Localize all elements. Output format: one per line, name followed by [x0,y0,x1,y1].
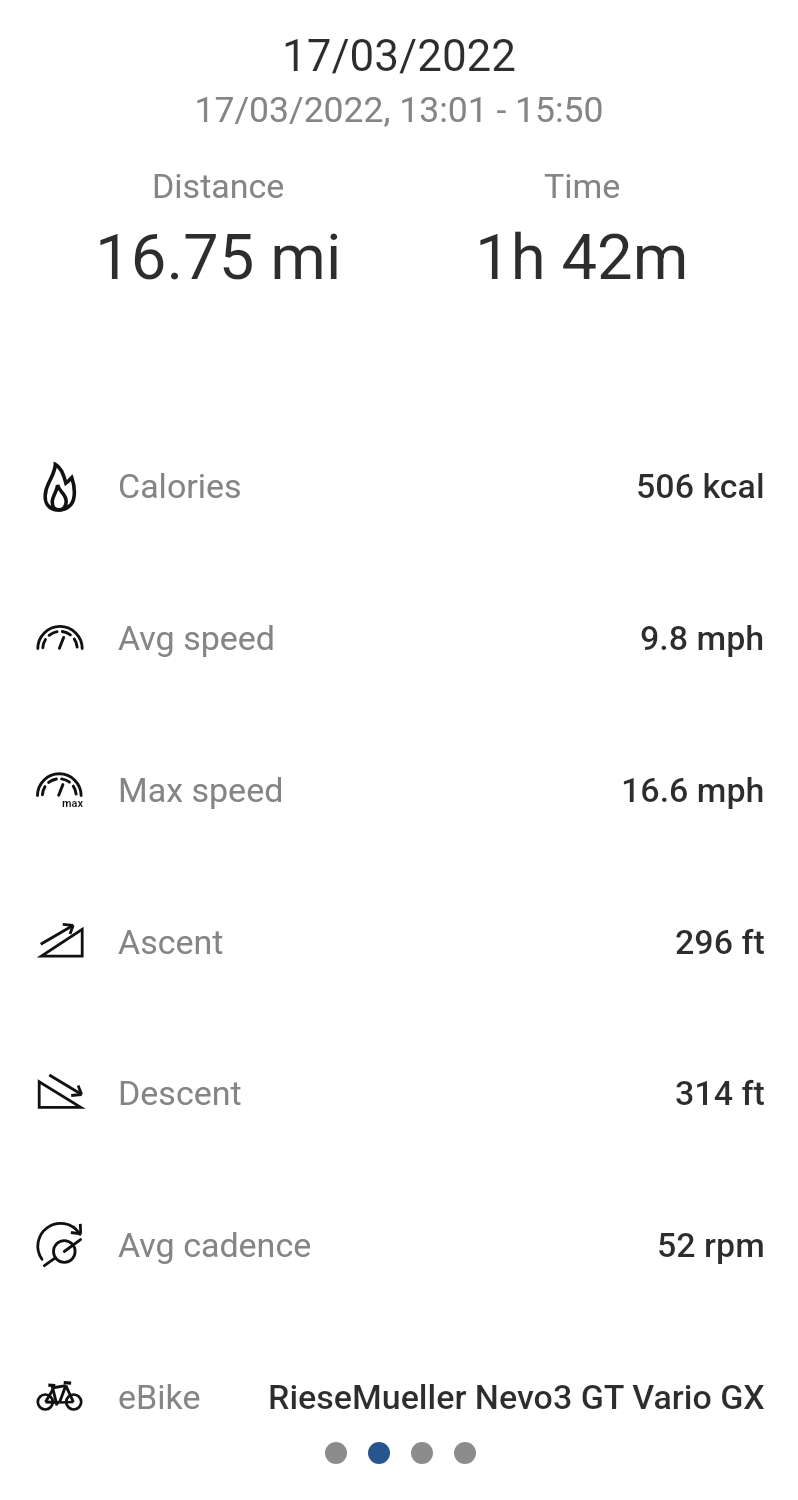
button[interactable]: Avg cadence [0,1169,798,1321]
staticText: max [62,797,84,810]
button[interactable]: Calories [0,410,798,562]
button[interactable]: Avg speed [0,562,798,714]
button[interactable]: Page 3 [411,1442,433,1464]
staticText: Max speed [118,770,284,810]
staticText: RieseMueller Nevo3 GT Vario GX [268,1377,765,1417]
staticText: 1h 42m [475,220,689,294]
button[interactable]: Page 1 [325,1442,347,1464]
staticText: 52 rpm [657,1225,765,1265]
staticText: 17/03/2022 [0,30,798,82]
button[interactable]: max [0,714,798,866]
staticText: 17/03/2022, 13:01 - 15:50 [0,89,798,131]
staticText: Calories [118,466,242,506]
staticText: 506 kcal [636,466,765,506]
staticText: 16.75 mi [95,220,342,294]
staticText: 9.8 mph [640,618,765,658]
button[interactable]: Descent [0,1017,798,1169]
staticText: Distance [152,166,285,206]
staticText: Avg cadence [118,1225,312,1265]
button[interactable]: Page 4 [454,1442,476,1464]
button[interactable]: Ascent [0,866,798,1018]
staticText: eBike [118,1377,201,1417]
button[interactable]: Page 2, selected [368,1442,390,1464]
staticText: Avg speed [118,618,276,658]
button[interactable]: eBike [0,1321,798,1473]
staticText: Time [544,166,621,206]
staticText: 296 ft [675,922,765,962]
staticText: Ascent [118,922,224,962]
staticText: 16.6 mph [621,770,765,810]
staticText: Descent [118,1073,242,1113]
staticText: 314 ft [675,1073,765,1113]
